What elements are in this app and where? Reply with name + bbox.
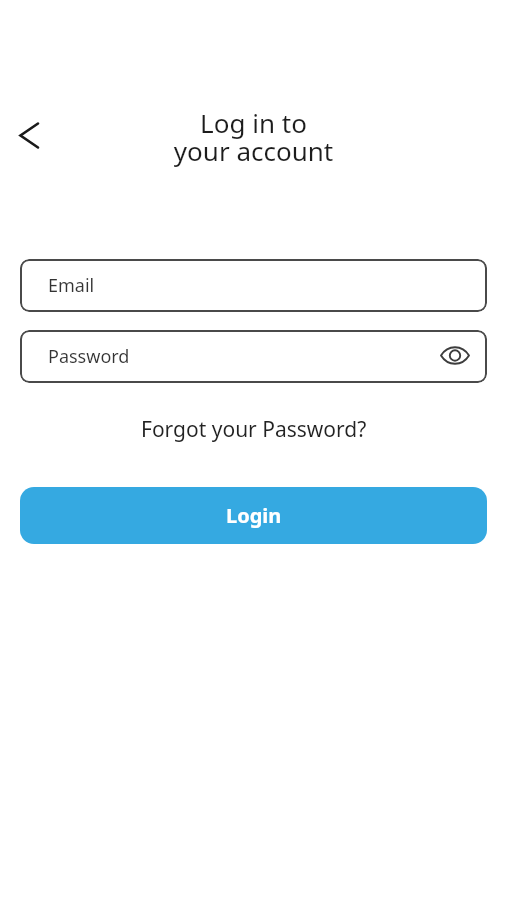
staticText: Email [48,273,95,298]
button[interactable]: Email [20,259,487,312]
button[interactable]: Login [20,487,487,544]
button[interactable] [10,116,48,154]
staticText: Forgot your Password? [141,415,367,444]
button[interactable]: Forgot your Password? [141,415,367,444]
button[interactable]: Password [20,330,487,383]
staticText: Password [48,344,130,369]
staticText: Login [226,502,282,529]
button[interactable] [440,344,470,366]
staticText: Log in to your account [0,105,507,169]
